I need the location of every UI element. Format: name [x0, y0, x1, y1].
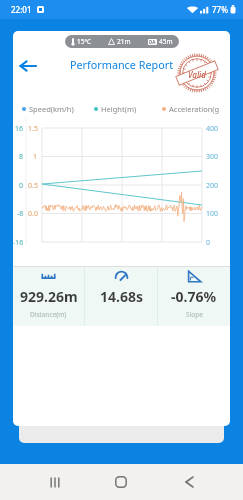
staticText: 15℃: [77, 37, 91, 46]
button[interactable]: Home: [104, 464, 137, 500]
button[interactable]: 15℃: [65, 35, 179, 48]
staticText: 16: [15, 124, 24, 134]
staticText: 1: [33, 152, 38, 162]
staticText: 400: [206, 124, 219, 134]
staticText: Distance(m): [30, 310, 67, 319]
staticText: Slope: [186, 310, 203, 319]
staticText: 1.5: [28, 124, 38, 134]
staticText: 200: [206, 181, 219, 191]
staticText: 0.5: [28, 181, 38, 191]
staticText: 77%: [212, 4, 228, 15]
staticText: 14.68s: [100, 287, 143, 306]
staticText: 0: [19, 181, 24, 191]
button[interactable]: Back: [18, 56, 38, 76]
staticText: 929.26m: [20, 287, 78, 306]
staticText: DA: [149, 39, 156, 45]
staticText: Valid: [188, 69, 206, 80]
staticText: 21m: [117, 37, 131, 46]
staticText: 0.0: [28, 209, 38, 219]
staticText: 8: [19, 152, 24, 162]
staticText: 22:01: [11, 4, 32, 15]
staticText: 300: [206, 152, 219, 162]
button[interactable]: Recents: [38, 464, 71, 500]
staticText: 100: [206, 209, 219, 219]
staticText: -16: [13, 238, 24, 248]
button[interactable]: Back: [173, 464, 206, 500]
button[interactable]: 14.68s: [85, 267, 157, 326]
staticText: -0.76%: [171, 287, 217, 306]
button[interactable]: 929.26m: [13, 267, 84, 326]
staticText: Speed(km/h): [29, 104, 74, 114]
staticText: 0: [206, 238, 211, 248]
staticText: Performance Report: [70, 57, 174, 72]
staticText: 45m: [159, 37, 173, 46]
button[interactable]: -0.76%: [158, 267, 230, 326]
staticText: Height(m): [101, 104, 137, 114]
staticText: Acceleration(g: [169, 104, 220, 114]
staticText: -8: [17, 209, 24, 219]
